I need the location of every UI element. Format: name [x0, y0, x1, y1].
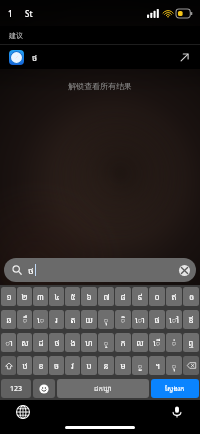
button[interactable]: Emoji [33, 379, 55, 398]
button[interactable]: ា [1, 333, 16, 352]
staticText: ថ [32, 52, 38, 63]
staticText: ប [86, 360, 92, 371]
button[interactable]: ៅ [166, 310, 182, 329]
button[interactable]: ួ [132, 356, 148, 375]
button[interactable]: ៥ [65, 287, 80, 306]
button[interactable]: េ [33, 310, 48, 329]
button[interactable]: ឥ [166, 287, 182, 306]
button[interactable]: Change language [16, 405, 30, 419]
staticText: ន [103, 360, 109, 371]
button[interactable]: ឹ [17, 310, 32, 329]
button[interactable]: ថ [4, 258, 196, 282]
button[interactable]: ឆ [1, 310, 16, 329]
button[interactable]: វ [65, 356, 80, 375]
button[interactable]: ផ [149, 310, 165, 329]
button[interactable]: ថ [0, 45, 200, 69]
staticText: 解锁查看所有结果 [68, 81, 132, 91]
button[interactable]: ្ [98, 333, 114, 352]
button[interactable]: ់ [166, 333, 182, 352]
staticText: ហ [85, 337, 93, 348]
staticText: 建议 [9, 31, 23, 40]
button[interactable]: ប [81, 356, 97, 375]
button[interactable]: ។ [149, 356, 165, 375]
staticText: ៧ [103, 291, 110, 302]
button[interactable]: ៨ [115, 287, 131, 306]
button[interactable]: ១ [1, 287, 16, 306]
staticText: ិ [120, 314, 126, 325]
staticText: ុ [171, 360, 177, 371]
button[interactable]: 123 [1, 379, 31, 398]
button[interactable]: ល [132, 333, 148, 352]
other: Open [177, 50, 191, 64]
staticText: ួ [137, 360, 143, 371]
staticText: ម [120, 360, 126, 371]
staticText: ោ [135, 314, 145, 325]
staticText: ឋ [22, 360, 28, 371]
staticText: ៤ [54, 291, 60, 302]
button[interactable]: ៤ [49, 287, 64, 306]
staticText: ើ [153, 337, 161, 348]
button[interactable]: ម [115, 356, 131, 375]
button[interactable]: ដ [33, 333, 48, 352]
staticText: ៦ [86, 291, 92, 302]
button[interactable]: យ [81, 310, 97, 329]
button[interactable]: ឋ [17, 356, 32, 375]
staticText: ស [21, 337, 29, 348]
button[interactable]: ឪ [183, 310, 199, 329]
button[interactable]: ស [17, 333, 32, 352]
button[interactable]: ៩ [132, 287, 148, 306]
staticText: ដកឃ្លា [94, 384, 112, 394]
staticText: ៣ [37, 291, 44, 302]
button[interactable]: ិ [115, 310, 131, 329]
staticText: ថ [28, 264, 34, 276]
staticText: េ [37, 314, 45, 325]
button[interactable]: ឮ [183, 333, 199, 352]
staticText: ថ [54, 337, 60, 348]
button[interactable]: ៦ [81, 287, 97, 306]
button[interactable]: ខ [33, 356, 48, 375]
staticText: រ [55, 314, 58, 325]
staticText: ផ [154, 314, 160, 325]
button[interactable]: ោ [132, 310, 148, 329]
button[interactable]: ស្វែងរក [151, 379, 199, 398]
button[interactable]: ដកឃ្លា [57, 379, 149, 398]
staticText: ៨ [120, 291, 126, 302]
staticText: ឹ [22, 314, 28, 325]
button[interactable]: ុ [166, 356, 182, 375]
staticText: ច [54, 360, 59, 371]
staticText: ឲ [189, 291, 194, 302]
button[interactable]: ក [115, 333, 131, 352]
staticText: ស្វែងរក [165, 384, 185, 394]
button[interactable]: Voice input [170, 405, 184, 419]
staticText: ុ [103, 314, 109, 325]
staticText: ត [70, 314, 76, 325]
button[interactable]: ថ [49, 333, 64, 352]
staticText: ្ [103, 337, 109, 348]
button[interactable]: ២ [17, 287, 32, 306]
button[interactable]: Shift [1, 356, 16, 375]
button[interactable]: Backspace [183, 356, 199, 375]
staticText: 1 [8, 8, 13, 19]
staticText: ល [136, 337, 144, 348]
button[interactable]: ៧ [98, 287, 114, 306]
button[interactable]: រ [49, 310, 64, 329]
staticText: ឮ [188, 337, 194, 348]
button[interactable]: ច [49, 356, 64, 375]
button[interactable]: ហ [81, 333, 97, 352]
button[interactable]: ត [65, 310, 80, 329]
button[interactable]: ង [65, 333, 80, 352]
button[interactable]: ើ [149, 333, 165, 352]
button[interactable]: ឲ [183, 287, 199, 306]
staticText: ង [70, 337, 76, 348]
staticText: St [25, 8, 33, 19]
button[interactable]: Clear text [179, 265, 190, 276]
staticText: ឪ [188, 314, 194, 325]
staticText: យ [85, 314, 93, 325]
staticText: ៅ [169, 314, 179, 325]
button[interactable]: ុ [98, 310, 114, 329]
button[interactable]: ន [98, 356, 114, 375]
button[interactable]: ៣ [33, 287, 48, 306]
staticText: ៥ [70, 291, 76, 302]
button[interactable]: ០ [149, 287, 165, 306]
staticText: ខ [38, 360, 44, 371]
